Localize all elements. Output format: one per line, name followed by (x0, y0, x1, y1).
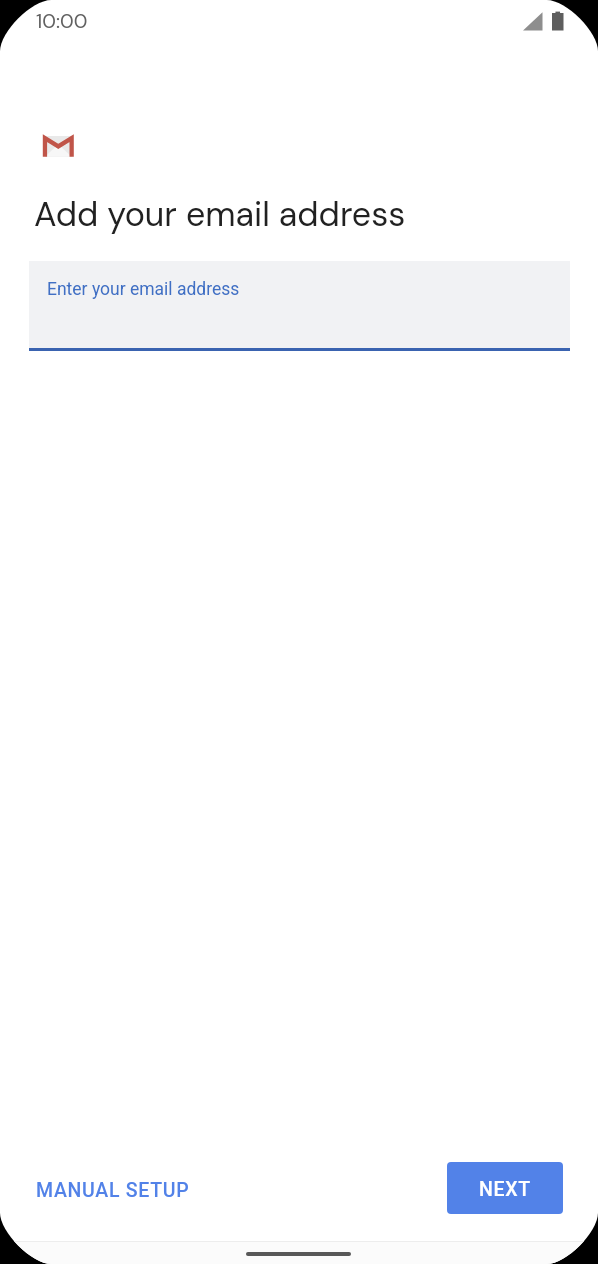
other: Gmail (40, 134, 78, 162)
button[interactable]: MANUAL SETUP (22, 1171, 204, 1210)
staticText: 10:00 (36, 8, 88, 34)
staticText: MANUAL SETUP (36, 1179, 190, 1202)
other: Signal strength and battery status (523, 11, 564, 32)
staticText: NEXT (479, 1178, 531, 1201)
staticText: Add your email address (34, 192, 406, 236)
button[interactable]: NEXT (447, 1162, 563, 1214)
button[interactable]: Enter your email address (29, 261, 570, 351)
other: Home (246, 1252, 351, 1256)
staticText: Enter your email address (47, 279, 240, 300)
